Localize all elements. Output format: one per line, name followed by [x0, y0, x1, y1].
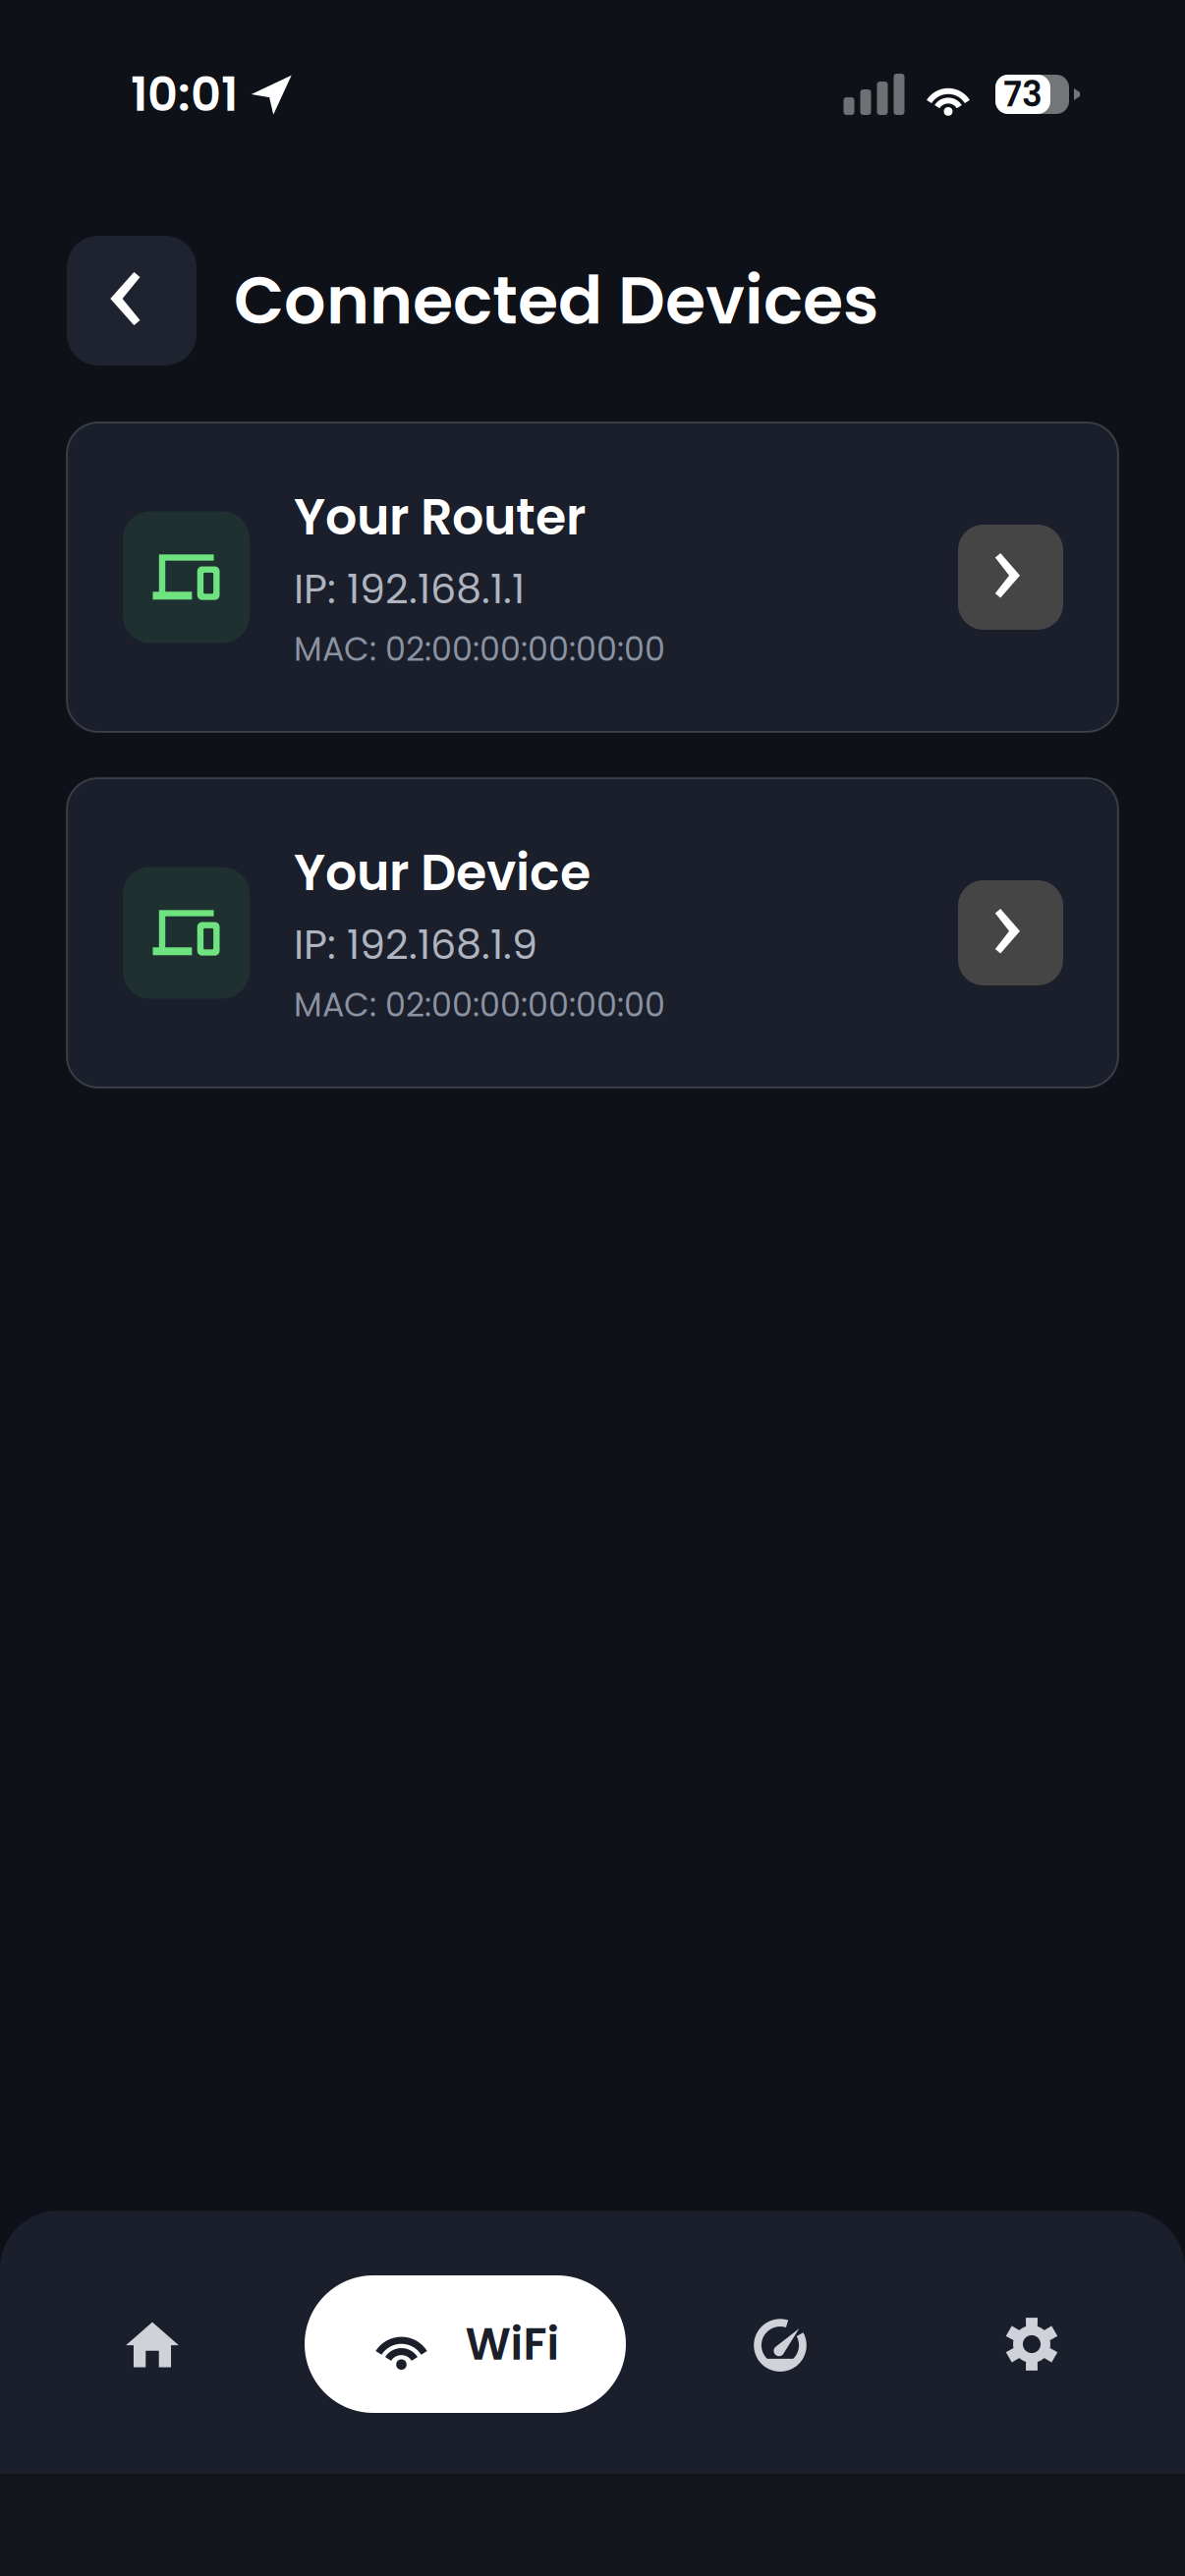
staticText: WiFi — [465, 2313, 560, 2375]
button[interactable]: Speed test — [626, 2277, 934, 2411]
button[interactable]: Back — [67, 236, 197, 365]
staticText: Your Device — [294, 838, 591, 907]
staticText: 10:01 — [131, 61, 238, 127]
button[interactable]: Settings — [934, 2277, 1129, 2411]
staticText: MAC: 02:00:00:00:00:00 — [294, 982, 665, 1028]
button[interactable]: Your Device — [67, 778, 1118, 1088]
staticText: IP: 192.168.1.9 — [294, 916, 537, 973]
staticText: Your Router — [294, 482, 586, 552]
button[interactable]: Your Router — [67, 422, 1118, 732]
staticText: Connected Devices — [234, 255, 878, 346]
button[interactable]: WiFi — [305, 2275, 626, 2413]
staticText: MAC: 02:00:00:00:00:00 — [294, 626, 665, 672]
button[interactable]: Home — [0, 2277, 305, 2411]
staticText: IP: 192.168.1.1 — [294, 561, 525, 618]
staticText: 73 — [1003, 70, 1043, 118]
